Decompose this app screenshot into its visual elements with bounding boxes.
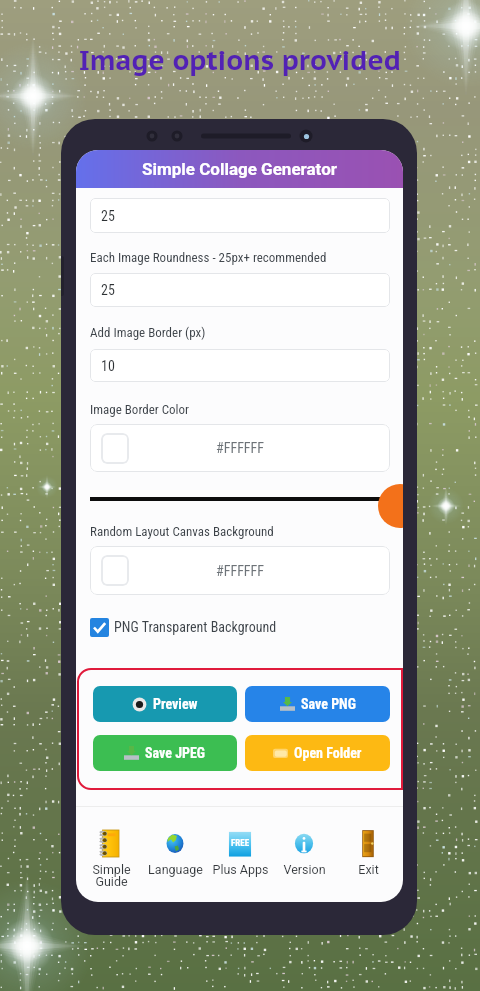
staticText: Random Layout Canvas Background: [90, 524, 274, 539]
staticText: FREE: [231, 838, 250, 849]
button[interactable]: FREE: [210, 829, 270, 877]
button[interactable]: 10: [90, 349, 390, 382]
staticText: 25: [101, 208, 115, 224]
staticText: Exit: [358, 862, 379, 877]
staticText: Preview: [153, 696, 198, 712]
button[interactable]: 25: [90, 273, 390, 307]
staticText: Language: [148, 862, 203, 877]
staticText: Image options provided: [79, 42, 402, 78]
staticText: Add Image Border (px): [90, 325, 206, 340]
staticText: Save PNG: [301, 696, 356, 712]
staticText: Version: [283, 862, 326, 877]
staticText: Simple Guide: [92, 862, 131, 889]
staticText: Each Image Roundness - 25px+ recommended: [90, 250, 327, 265]
staticText: 10: [101, 358, 115, 374]
button[interactable]: Simple Guide: [81, 829, 141, 889]
button[interactable]: Save PNG: [245, 686, 390, 722]
staticText: 25: [101, 282, 115, 298]
button[interactable]: Save JPEG: [93, 735, 237, 771]
button[interactable]: Exit: [338, 829, 398, 877]
staticText: Save JPEG: [145, 745, 206, 761]
staticText: Plus Apps: [212, 862, 269, 877]
button[interactable]: #FFFFFF: [90, 424, 390, 472]
button[interactable]: PNG Transparent Background: [90, 616, 277, 638]
staticText: #FFFFFF: [216, 440, 265, 456]
staticText: Image Border Color: [90, 402, 190, 417]
staticText: Simple Collage Generator: [142, 159, 337, 179]
button[interactable]: Version: [274, 829, 334, 877]
button[interactable]: #FFFFFF: [90, 546, 390, 595]
button[interactable]: Scroll to top: [378, 484, 403, 528]
button[interactable]: Preview: [93, 686, 237, 722]
staticText: Open Folder: [294, 745, 362, 761]
staticText: PNG Transparent Background: [114, 619, 277, 635]
button[interactable]: 25: [90, 198, 390, 233]
staticText: #FFFFFF: [216, 563, 265, 579]
button[interactable]: Language: [145, 829, 205, 877]
button[interactable]: Open Folder: [245, 735, 390, 771]
